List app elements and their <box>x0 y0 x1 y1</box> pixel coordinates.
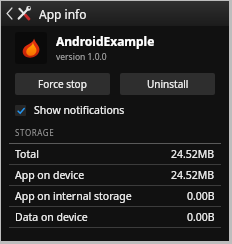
staticText: 24.52MB <box>171 147 215 161</box>
staticText: Show notifications <box>34 103 125 117</box>
staticText: 0.00B <box>187 189 215 203</box>
button[interactable]: App on device <box>1 165 229 186</box>
button[interactable]: Uninstall <box>120 73 215 95</box>
button[interactable]: Total <box>1 144 229 165</box>
staticText: Data on device <box>15 210 88 224</box>
staticText: App on device <box>15 168 85 182</box>
button[interactable]: Show notifications <box>15 103 215 117</box>
button[interactable]: Data on device <box>1 207 229 228</box>
staticText: App info <box>39 6 87 22</box>
staticText: AndroidExample <box>56 33 155 49</box>
staticText: STORAGE <box>15 127 55 138</box>
staticText: Total <box>15 147 39 161</box>
staticText: Force stop <box>38 77 87 91</box>
button[interactable]: Back to App info <box>4 5 34 22</box>
button[interactable]: Force stop <box>15 73 110 95</box>
staticText: 24.52MB <box>171 168 215 182</box>
staticText: 0.00B <box>187 210 215 224</box>
staticText: App on internal storage <box>15 189 132 203</box>
button[interactable]: App on internal storage <box>1 186 229 207</box>
staticText: Uninstall <box>147 77 189 91</box>
staticText: version 1.0.0 <box>56 51 107 63</box>
